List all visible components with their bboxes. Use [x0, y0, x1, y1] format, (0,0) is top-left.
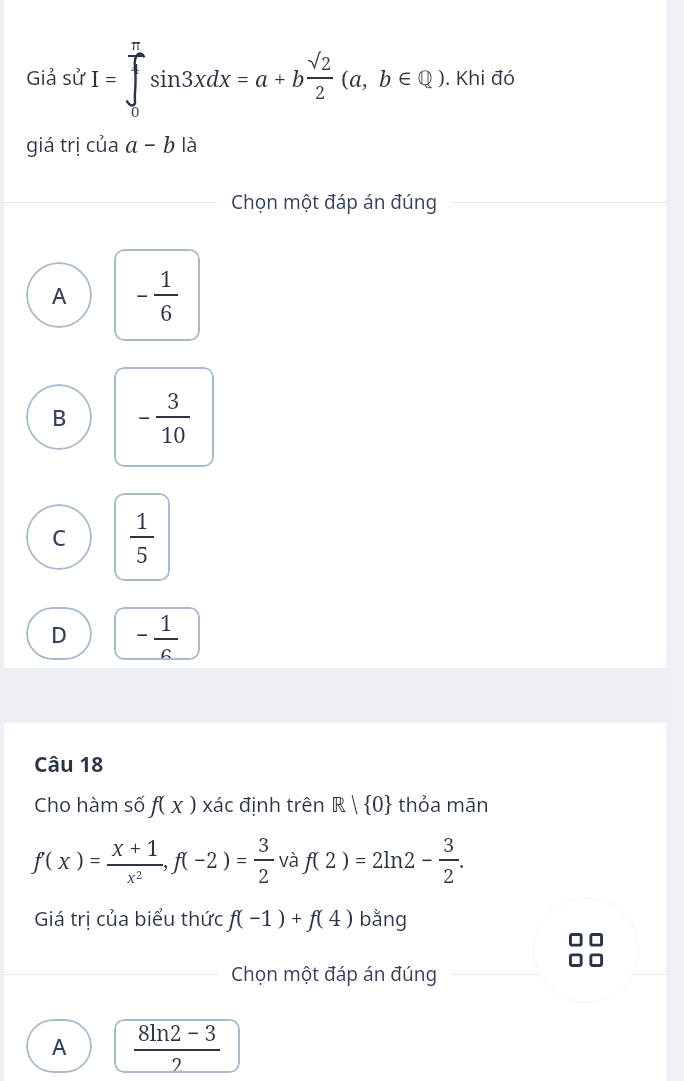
- staticText: x: [171, 789, 184, 819]
- button[interactable]: A: [4, 1011, 666, 1081]
- staticText: Chọn một đáp án đúng: [231, 189, 438, 215]
- staticText: B: [52, 402, 67, 432]
- staticText: Câu 18: [34, 750, 104, 779]
- staticText: x: [112, 834, 124, 863]
- staticText: giá trị của: [26, 131, 125, 158]
- staticText: −: [138, 402, 151, 432]
- staticText: xdx: [194, 63, 231, 93]
- staticText: ( −2 ) =: [181, 846, 254, 875]
- staticText: 6: [160, 297, 173, 327]
- staticText: a: [349, 63, 362, 93]
- button[interactable]: Danh sách câu hỏi: [533, 897, 639, 1003]
- staticText: 2: [258, 862, 270, 889]
- staticText: 0: [131, 101, 140, 121]
- staticText: x: [127, 867, 136, 887]
- staticText: b: [163, 129, 176, 159]
- staticText: Giả sử: [26, 64, 91, 91]
- staticText: 4: [131, 58, 140, 78]
- staticText: 2: [136, 867, 143, 882]
- staticText: −: [138, 129, 163, 159]
- staticText: C: [52, 522, 66, 552]
- staticText: 6: [160, 641, 173, 660]
- staticText: ): [184, 790, 197, 819]
- staticText: 3: [167, 385, 180, 415]
- staticText: . Khi đó: [445, 64, 516, 91]
- staticText: −: [136, 619, 149, 649]
- staticText: ( −1 ) +: [236, 904, 309, 933]
- staticText: ∈ ℚ ): [392, 64, 445, 91]
- staticText: +: [268, 63, 292, 93]
- staticText: ℝ \ {0}: [331, 790, 393, 819]
- staticText: xác định trên: [197, 791, 331, 818]
- staticText: A: [52, 1031, 67, 1061]
- staticText: Chọn một đáp án đúng: [231, 961, 438, 987]
- staticText: Cho hàm số: [34, 791, 151, 818]
- staticText: 2: [443, 862, 455, 889]
- staticText: a: [255, 63, 268, 93]
- staticText: 3: [443, 831, 455, 858]
- staticText: x: [58, 845, 71, 875]
- button[interactable]: D: [4, 599, 666, 668]
- button[interactable]: A: [4, 241, 666, 349]
- staticText: + 1: [124, 834, 159, 863]
- staticText: f: [305, 845, 312, 875]
- staticText: 1: [160, 607, 173, 637]
- staticText: 1: [136, 505, 149, 535]
- staticText: f: [229, 903, 236, 933]
- staticText: f: [174, 845, 181, 875]
- staticText: 5: [136, 539, 149, 569]
- staticText: 8ln2 − 3: [138, 1019, 217, 1048]
- staticText: π: [131, 34, 141, 54]
- staticText: và: [274, 847, 305, 873]
- staticText: A: [52, 280, 67, 310]
- staticText: bằng: [354, 905, 408, 932]
- button[interactable]: B: [4, 359, 666, 475]
- staticText: D: [51, 619, 68, 649]
- staticText: (: [158, 790, 171, 819]
- staticText: f: [34, 845, 41, 875]
- staticText: 2: [321, 51, 332, 76]
- staticText: a: [125, 129, 138, 159]
- staticText: −: [136, 280, 149, 310]
- button[interactable]: C: [4, 485, 666, 589]
- staticText: 10: [161, 419, 186, 449]
- staticText: b: [292, 63, 305, 93]
- staticText: =: [231, 63, 255, 93]
- staticText: ,: [362, 63, 379, 93]
- staticText: ) =: [71, 846, 107, 875]
- staticText: là: [176, 131, 198, 158]
- staticText: sin3: [150, 63, 194, 93]
- staticText: I =: [91, 63, 118, 93]
- staticText: (: [341, 63, 349, 93]
- staticText: 3: [258, 831, 270, 858]
- staticText: ( 2 ) = 2ln2 −: [312, 846, 439, 875]
- staticText: 2: [171, 1052, 183, 1073]
- staticText: 2: [315, 80, 326, 105]
- staticText: ′(: [41, 846, 58, 875]
- staticText: .: [459, 846, 465, 875]
- staticText: 1: [160, 263, 173, 293]
- staticText: ( 4 ): [316, 904, 354, 933]
- staticText: b: [379, 63, 392, 93]
- staticText: f: [151, 789, 158, 819]
- staticText: f: [309, 903, 316, 933]
- staticText: ,: [163, 846, 174, 875]
- staticText: thỏa mãn: [393, 791, 489, 818]
- staticText: Giá trị của biểu thức: [34, 905, 229, 932]
